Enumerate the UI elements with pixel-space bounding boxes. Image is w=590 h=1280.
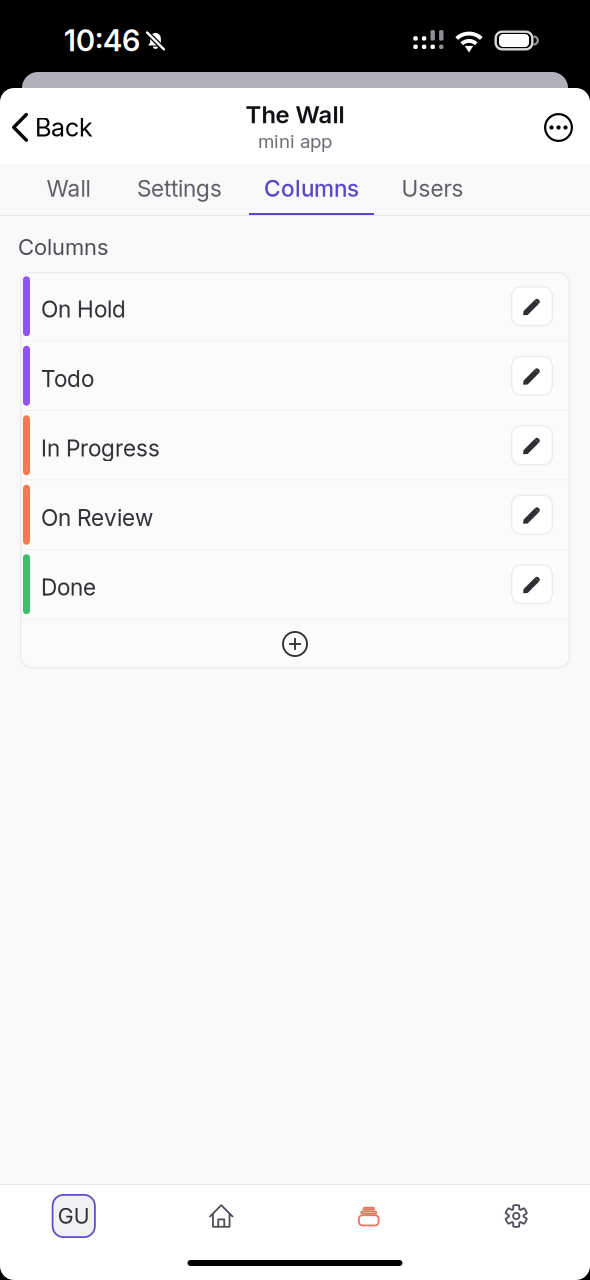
button[interactable]: Users — [389, 164, 476, 216]
staticText: Columns — [264, 175, 359, 202]
button[interactable]: Columns — [234, 164, 389, 216]
staticText: Users — [401, 175, 463, 202]
staticText: On Hold — [41, 295, 126, 323]
staticText: The Wall — [245, 100, 344, 129]
staticText: Todo — [41, 365, 94, 392]
staticText: In Progress — [41, 434, 160, 462]
button[interactable]: Account — [0, 1185, 147, 1247]
button[interactable]: Settings — [125, 164, 234, 216]
button[interactable]: Add column — [20, 619, 570, 668]
button[interactable]: On Review — [20, 480, 570, 549]
button[interactable]: On Hold — [20, 272, 570, 340]
staticText: Columns — [18, 234, 108, 260]
staticText: GU — [58, 1203, 90, 1229]
staticText: Settings — [137, 175, 222, 202]
staticText: Back — [35, 112, 93, 143]
button[interactable]: Todo — [20, 341, 570, 410]
button[interactable]: Settings — [442, 1185, 590, 1247]
button[interactable]: In Progress — [20, 411, 570, 479]
staticText: On Review — [41, 504, 153, 531]
staticText: Done — [41, 573, 96, 601]
staticText: 10:46 — [64, 23, 140, 58]
button[interactable]: Done — [20, 550, 570, 618]
staticText: mini app — [258, 130, 332, 153]
button[interactable]: Apps — [295, 1185, 442, 1247]
button[interactable]: More options — [532, 88, 590, 164]
button[interactable]: Back — [0, 88, 105, 164]
button[interactable]: Wall — [12, 164, 125, 216]
staticText: Wall — [46, 175, 90, 202]
button[interactable]: Home — [147, 1185, 295, 1247]
